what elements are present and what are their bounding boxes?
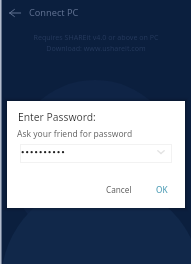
- button[interactable]: Back: [0, 0, 29, 25]
- staticText: Requires SHAREit v4.0 or above on PC: [33, 32, 159, 42]
- button[interactable]: OK: [151, 180, 173, 199]
- staticText: Ask your friend for password: [17, 128, 133, 140]
- staticText: Cancel: [106, 184, 132, 195]
- staticText: OK: [156, 184, 168, 195]
- staticText: Download: www.ushareit.com: [46, 43, 146, 53]
- staticText: Enter Password:: [18, 110, 96, 124]
- staticText: Connect PC: [29, 6, 79, 19]
- button[interactable]: Password field: [20, 144, 172, 163]
- button[interactable]: Cancel: [101, 180, 137, 199]
